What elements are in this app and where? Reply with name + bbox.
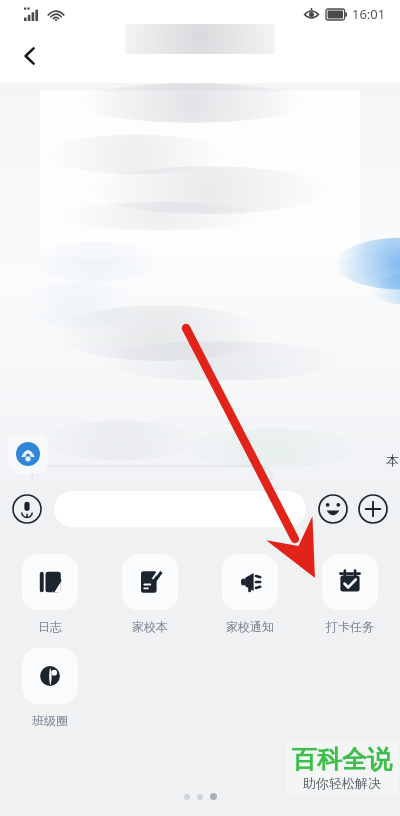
staticText: 班级圈	[32, 713, 68, 728]
button[interactable]: Back	[8, 34, 52, 78]
button[interactable]: 家校本	[100, 554, 200, 634]
button[interactable]: Voice input	[10, 492, 44, 526]
button[interactable]: 家校通知	[200, 554, 300, 634]
button[interactable]	[54, 491, 306, 527]
button[interactable]: 打卡任务	[300, 554, 400, 634]
staticText: 日志	[38, 619, 62, 634]
staticText: 本	[386, 452, 399, 468]
staticText: 16:01	[352, 5, 386, 23]
button[interactable]: 班级圈	[0, 648, 100, 728]
staticText: 家校通知	[226, 619, 274, 634]
button[interactable]: More	[356, 492, 390, 526]
staticText: 家校本	[132, 619, 168, 634]
button[interactable]: 日志	[0, 554, 100, 634]
staticText: 百科全说	[292, 744, 392, 775]
staticText: 助你轻松解决	[303, 775, 381, 791]
button[interactable]: Emoji	[316, 492, 350, 526]
staticText: 打卡任务	[326, 619, 374, 634]
